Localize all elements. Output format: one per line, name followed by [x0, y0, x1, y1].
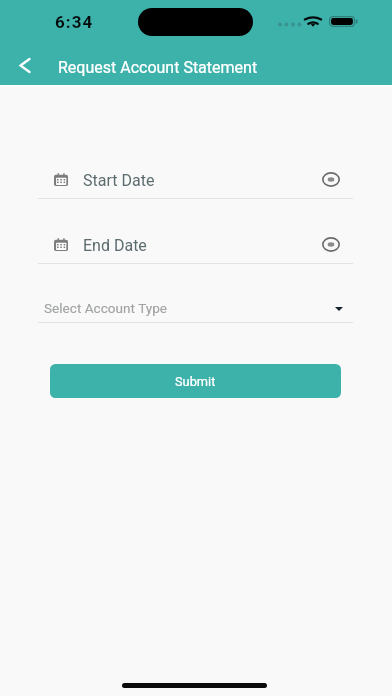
staticText: 6:34 [55, 12, 94, 32]
button[interactable]: Select date [318, 231, 344, 257]
button[interactable]: Submit [50, 364, 341, 398]
other: Expand account type [328, 298, 350, 320]
button[interactable]: Start Date [38, 168, 353, 199]
staticText: End Date [83, 236, 147, 255]
button[interactable]: Select date [318, 166, 344, 192]
staticText: Select Account Type [44, 300, 168, 316]
button[interactable]: End Date [38, 233, 353, 264]
button[interactable]: Back [9, 50, 40, 81]
button[interactable]: Select Account Type [38, 292, 353, 323]
staticText: Request Account Statement [58, 58, 258, 77]
staticText: Submit [175, 374, 216, 389]
staticText: Start Date [83, 171, 155, 190]
